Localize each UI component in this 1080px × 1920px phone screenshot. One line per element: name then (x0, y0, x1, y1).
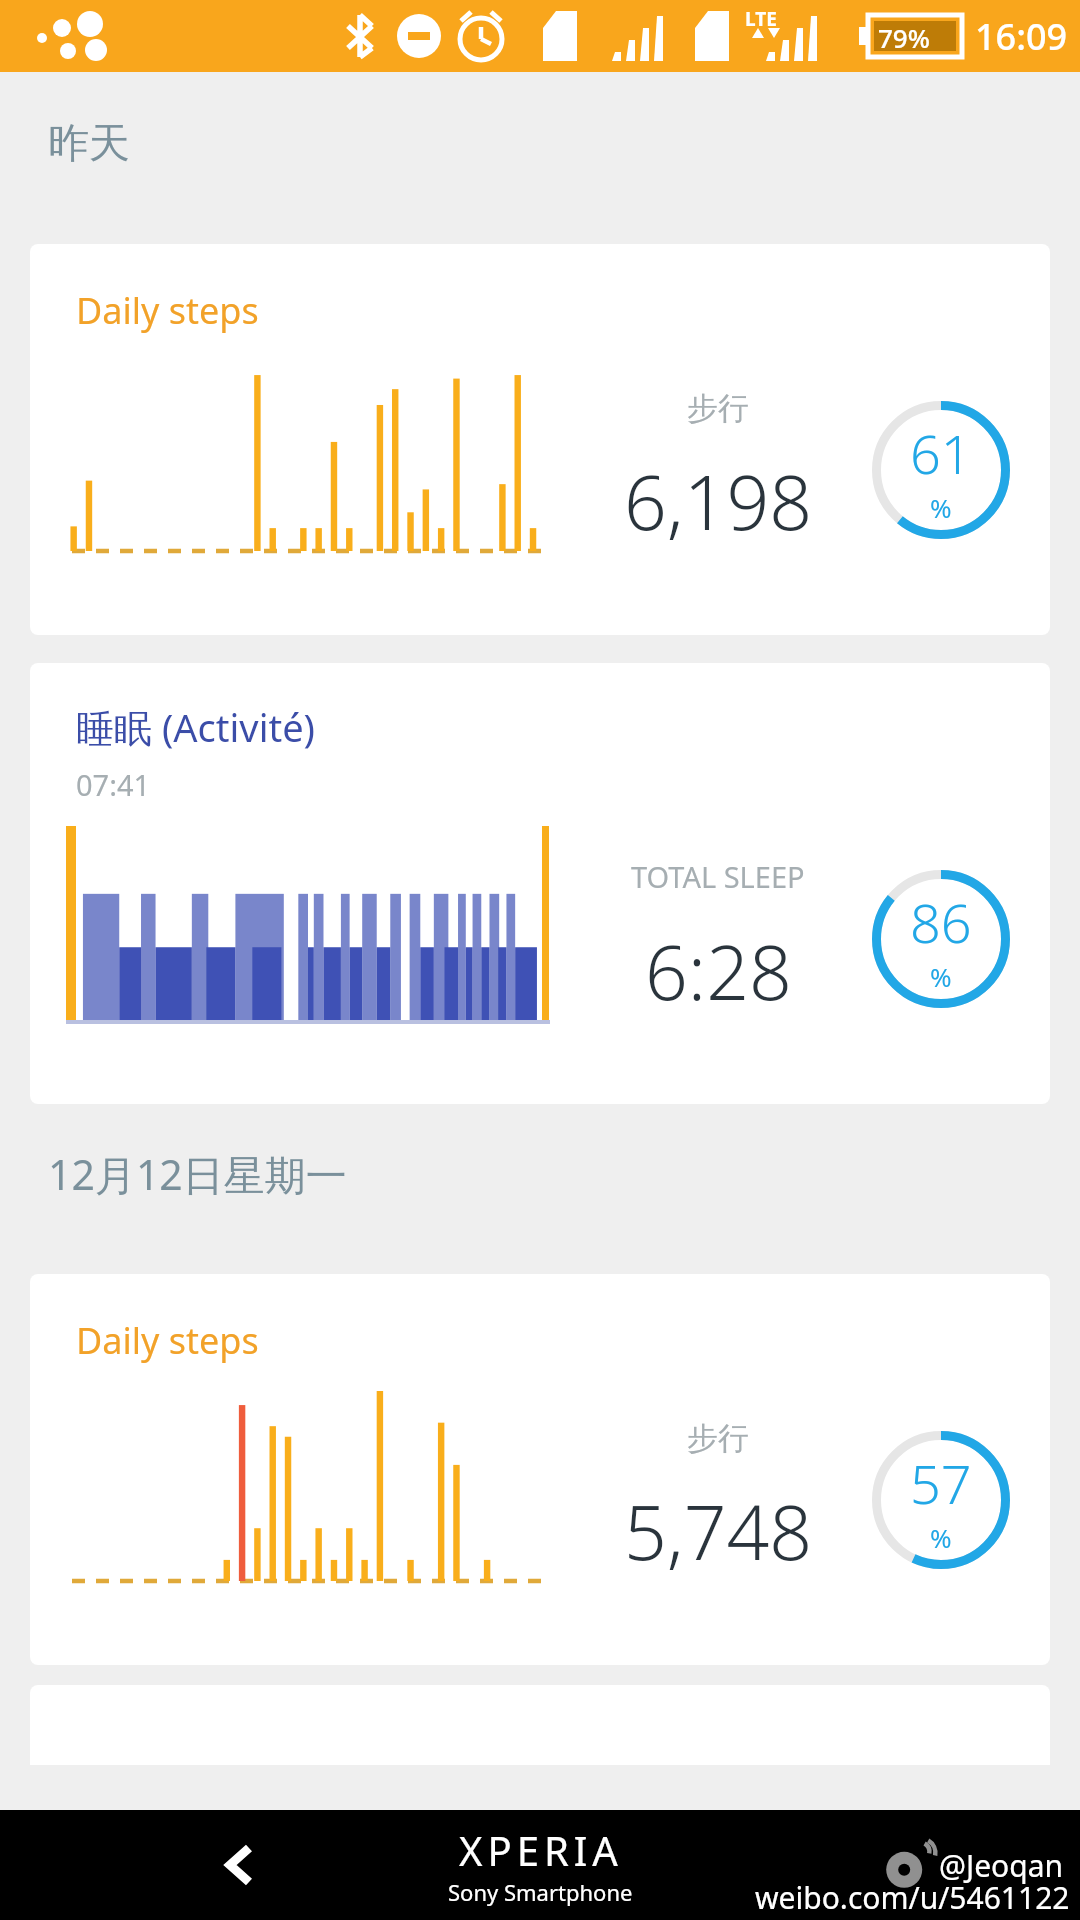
staticText: % (930, 1520, 952, 1555)
staticText: Daily steps (76, 286, 259, 335)
button[interactable]: Daily steps (30, 1274, 1050, 1665)
staticText: 步行 (687, 389, 749, 428)
staticText: @Jeoqan (939, 1845, 1064, 1886)
staticText: 步行 (687, 1419, 749, 1458)
staticText: 16:09 (975, 12, 1068, 61)
staticText: % (930, 959, 952, 994)
staticText: 昨天 (48, 118, 130, 170)
staticText: Sony Smartphone (448, 1877, 633, 1907)
staticText: Daily steps (76, 1316, 259, 1365)
button[interactable]: Daily steps (30, 244, 1050, 635)
staticText: 睡眠 (Activité) (76, 701, 315, 753)
staticText: % (930, 490, 952, 525)
staticText: 79% (878, 20, 930, 55)
staticText: 5,748 (624, 1480, 813, 1582)
staticText: 12月12日星期一 (48, 1146, 347, 1202)
button[interactable]: 睡眠 (Activité) (30, 663, 1050, 1104)
staticText: 07:41 (76, 765, 151, 804)
staticText: 57 (910, 1446, 972, 1520)
staticText: 6:28 (645, 920, 792, 1022)
button[interactable]: Back (195, 1820, 285, 1910)
staticText: LTE (745, 6, 777, 32)
staticText: 86 (910, 885, 972, 959)
staticText: weibo.com/u/5461122 (755, 1877, 1070, 1918)
staticText: TOTAL SLEEP (631, 857, 805, 896)
staticText: XPERIA (459, 1823, 623, 1877)
staticText: 6,198 (624, 450, 813, 552)
staticText: 61 (910, 416, 972, 490)
